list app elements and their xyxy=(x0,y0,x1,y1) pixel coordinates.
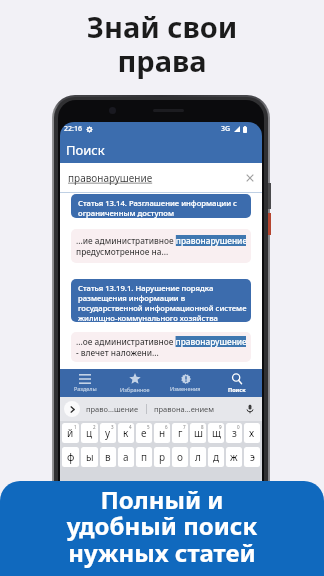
staticText: ф xyxy=(67,450,75,464)
staticText: жилищно-коммунального хозяйства xyxy=(78,313,218,322)
staticText: Изменения xyxy=(170,385,201,392)
staticText: Избранное xyxy=(120,386,150,393)
staticText: 8 xyxy=(201,424,204,430)
staticText: право…шение xyxy=(86,404,139,414)
staticText: Поиск xyxy=(66,141,105,159)
button[interactable]: ы xyxy=(81,447,98,467)
button[interactable]: р xyxy=(154,447,170,467)
staticText: г xyxy=(178,426,183,440)
staticText: р xyxy=(159,450,166,464)
button[interactable]: ф xyxy=(62,447,79,467)
staticText: о xyxy=(177,450,183,464)
button[interactable]: Изменения xyxy=(160,369,211,397)
button[interactable]: ж xyxy=(226,447,242,467)
staticText: 3G xyxy=(221,124,231,134)
button[interactable]: у xyxy=(100,423,116,443)
button[interactable]: п xyxy=(136,447,152,467)
staticText: Полный и удобный поиск нужных статей xyxy=(0,483,324,569)
staticText: ограниченным доступом xyxy=(78,208,174,218)
button[interactable]: й xyxy=(62,423,79,443)
button[interactable]: More suggestions xyxy=(64,401,80,417)
button[interactable]: а xyxy=(118,447,134,467)
staticText: 2 xyxy=(93,424,96,430)
staticText: л xyxy=(195,450,201,464)
button[interactable]: в xyxy=(100,447,116,467)
staticText: государственной информационной системе xyxy=(78,303,247,313)
button[interactable]: е xyxy=(136,423,152,443)
staticText: э xyxy=(250,450,255,464)
button[interactable]: л xyxy=(190,447,206,467)
staticText: предусмотренное на... xyxy=(76,246,169,257)
staticText: п xyxy=(141,450,148,464)
staticText: н xyxy=(159,426,166,440)
button[interactable]: щ xyxy=(208,423,224,443)
button[interactable]: х xyxy=(244,423,260,443)
button[interactable]: ...ие административное правонарушение xyxy=(71,229,251,263)
staticText: е xyxy=(141,426,147,440)
staticText: ...ое административное правонарушение xyxy=(76,336,246,347)
button[interactable]: о xyxy=(172,447,188,467)
staticText: ж xyxy=(230,450,238,464)
button[interactable]: к xyxy=(118,423,134,443)
button[interactable]: ц xyxy=(81,423,98,443)
button[interactable]: з xyxy=(226,423,242,443)
staticText: а xyxy=(123,450,129,464)
staticText: 7 xyxy=(183,424,186,430)
button[interactable]: э xyxy=(244,447,260,467)
staticText: Разделы xyxy=(74,385,97,392)
staticText: Статья 13.14. Разглашение информации с xyxy=(78,198,237,208)
staticText: к xyxy=(123,426,129,440)
staticText: х xyxy=(249,426,255,440)
other: Clear xyxy=(245,173,255,183)
staticText: 6 xyxy=(165,424,168,430)
staticText: Знай свои права xyxy=(0,7,324,80)
other: Voice input xyxy=(245,404,255,414)
button[interactable]: Избранное xyxy=(110,369,160,397)
staticText: 1 xyxy=(74,424,77,430)
staticText: 22:16 xyxy=(64,124,82,134)
staticText: Поиск xyxy=(228,386,246,393)
staticText: - влечет наложени... xyxy=(76,347,159,358)
button[interactable]: Поиск xyxy=(211,369,262,397)
staticText: з xyxy=(232,426,237,440)
staticText: размещения информации в xyxy=(78,293,186,303)
button[interactable]: Разделы xyxy=(60,369,110,397)
staticText: правона…ением xyxy=(154,404,214,414)
button[interactable]: г xyxy=(172,423,188,443)
staticText: ш xyxy=(194,426,203,440)
staticText: у xyxy=(105,426,111,440)
staticText: 3 xyxy=(111,424,114,430)
button[interactable]: Статья 13.14. Разглашение информации с xyxy=(71,194,251,218)
staticText: 0 xyxy=(237,424,240,430)
staticText: ц xyxy=(86,426,93,440)
button[interactable]: ...ое административное правонарушение xyxy=(71,332,251,362)
staticText: Статья 13.19.1. Нарушение порядка xyxy=(78,283,214,293)
staticText: 4 xyxy=(129,424,132,430)
staticText: в xyxy=(105,450,111,464)
staticText: й xyxy=(67,426,74,440)
staticText: ы xyxy=(86,450,94,464)
button[interactable]: д xyxy=(208,447,224,467)
staticText: д xyxy=(213,450,220,464)
staticText: ...ие административное правонарушение xyxy=(76,235,246,246)
staticText: 5 xyxy=(147,424,150,430)
staticText: щ xyxy=(212,426,221,440)
staticText: 9 xyxy=(219,424,222,430)
button[interactable]: ш xyxy=(190,423,206,443)
staticText: правонарушение xyxy=(68,171,153,185)
button[interactable]: н xyxy=(154,423,170,443)
button[interactable]: Статья 13.19.1. Нарушение порядка xyxy=(71,279,251,322)
